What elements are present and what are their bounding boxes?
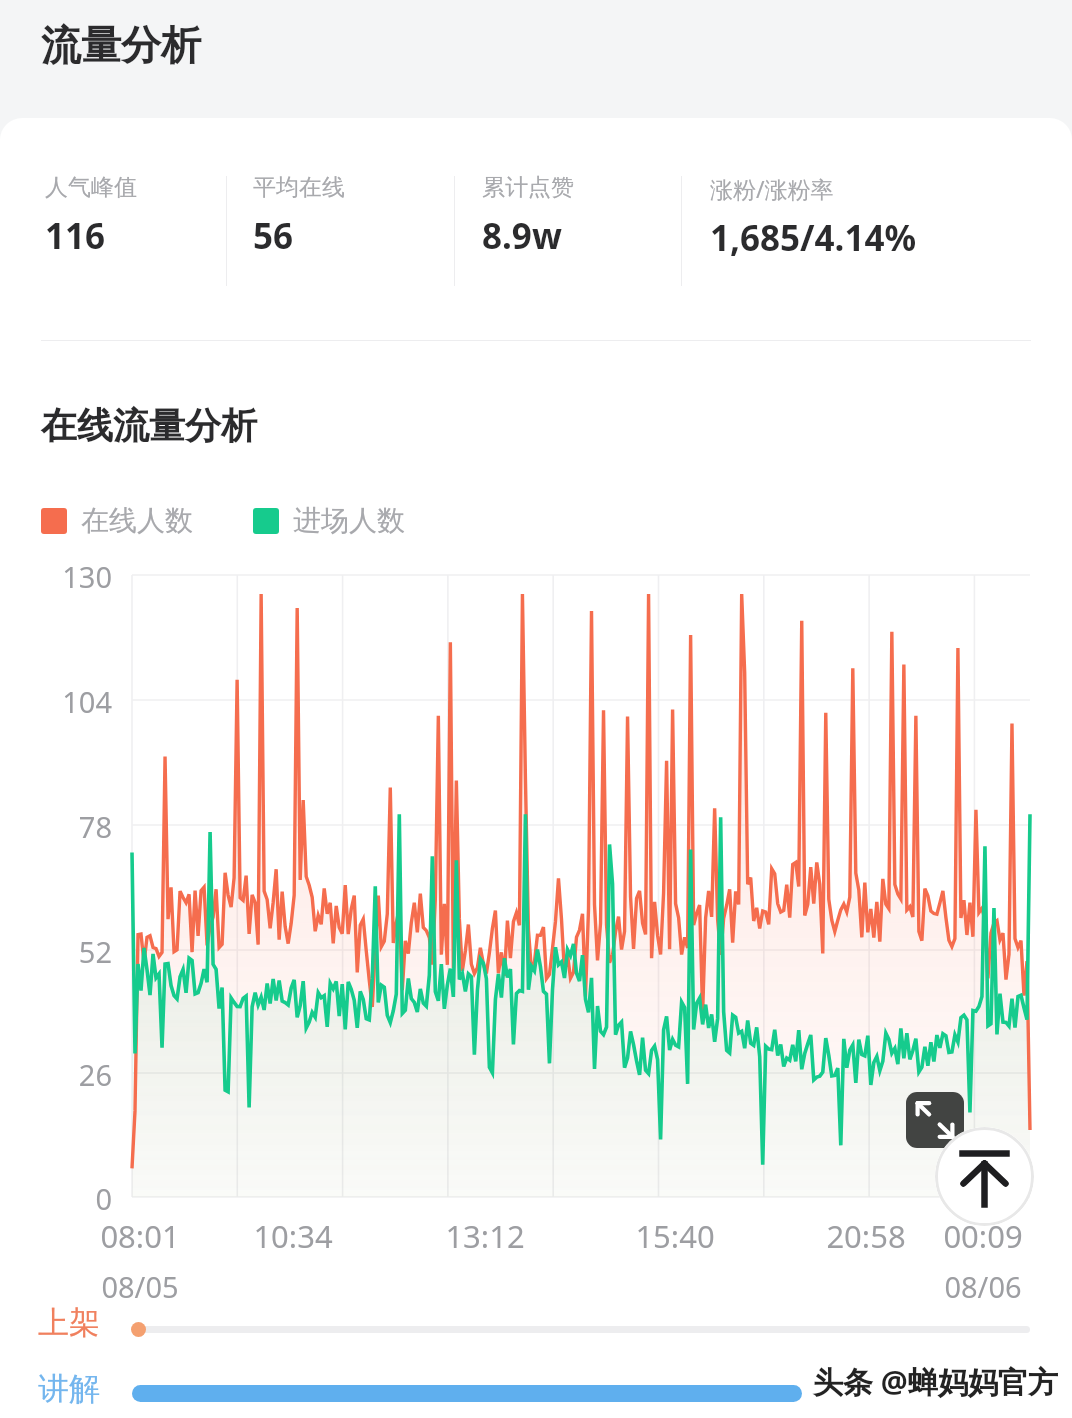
staticText: 流量分析 [41, 20, 201, 70]
staticText: 进场人数 [293, 503, 405, 538]
staticText: 累计点赞 [482, 173, 574, 202]
staticText: 08/06 [933, 1267, 1033, 1306]
staticText: 56 [253, 212, 294, 260]
staticText: 讲解 [38, 1369, 100, 1408]
staticText: 平均在线 [253, 173, 345, 202]
staticText: 8.9w [482, 212, 562, 260]
staticText: 130 [30, 557, 112, 596]
staticText: 20:58 [816, 1215, 916, 1257]
staticText: 08:01 [90, 1215, 190, 1257]
staticText: 78 [30, 807, 112, 846]
staticText: 1,685/4.14% [710, 214, 917, 262]
staticText: 在线人数 [81, 503, 193, 538]
staticText: 104 [30, 682, 112, 721]
button[interactable]: Scroll to top [935, 1127, 1034, 1226]
staticText: 0 [30, 1179, 112, 1218]
staticText: 10:34 [243, 1215, 343, 1257]
staticText: 00:09 [933, 1215, 1033, 1257]
staticText: 13:12 [435, 1215, 535, 1257]
button[interactable]: 进场人数 [253, 503, 405, 538]
staticText: 116 [45, 212, 106, 260]
staticText: 人气峰值 [45, 173, 137, 202]
staticText: 在线流量分析 [41, 403, 257, 448]
staticText: 涨粉/涨粉率 [710, 173, 834, 204]
staticText: 52 [30, 932, 112, 971]
staticText: 26 [30, 1055, 112, 1094]
staticText: 头条 @蝉妈妈官方 [813, 1361, 1058, 1402]
staticText: 上架 [38, 1303, 100, 1342]
button[interactable]: 在线人数 [41, 503, 193, 538]
button[interactable]: Collapse chart [906, 1092, 964, 1148]
staticText: 08/05 [90, 1267, 190, 1306]
staticText: 15:40 [625, 1215, 725, 1257]
